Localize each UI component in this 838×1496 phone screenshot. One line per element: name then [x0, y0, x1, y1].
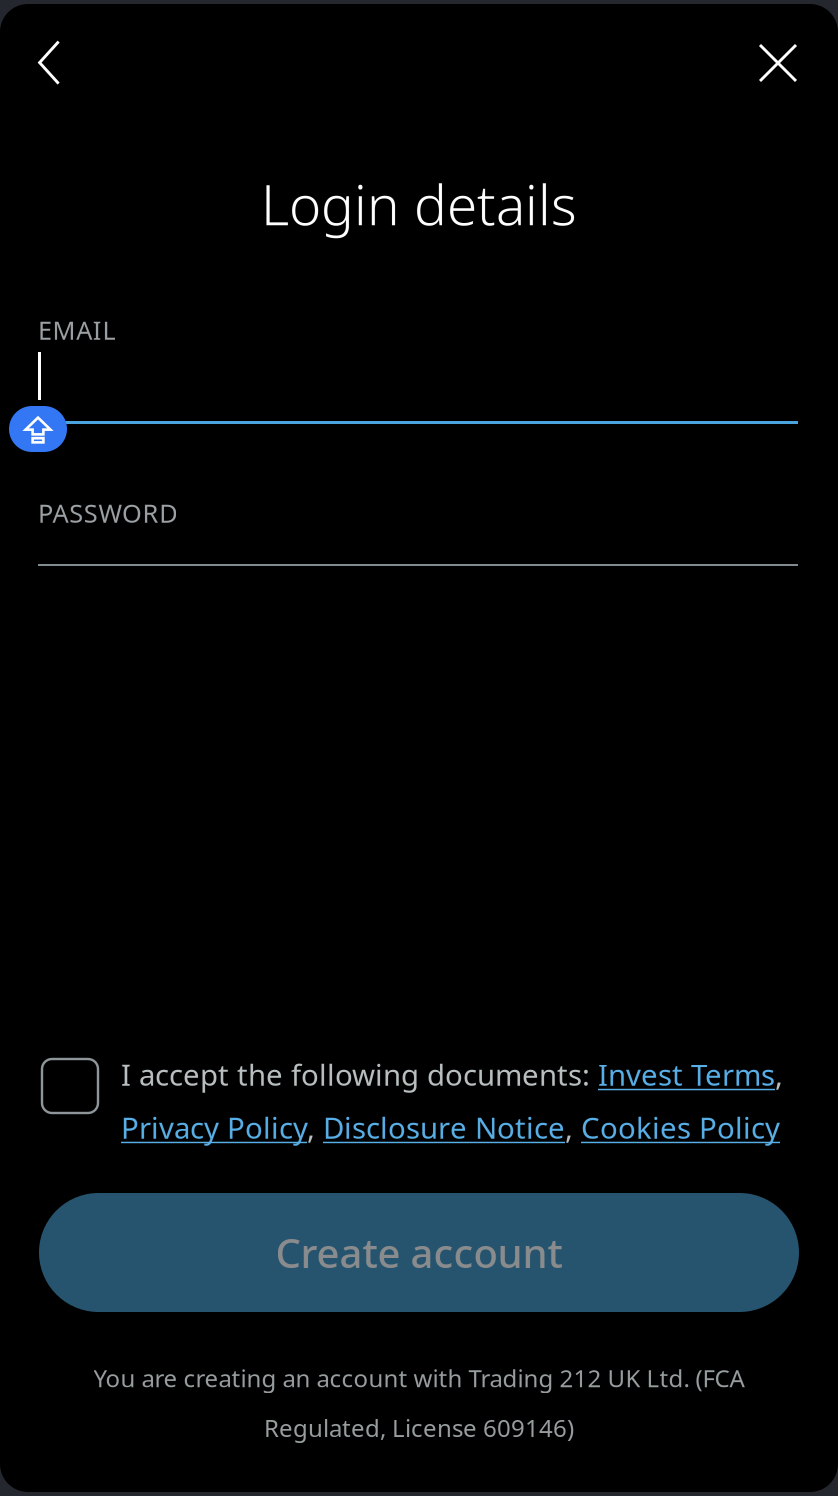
- staticText: Privacy Policy, Disclosure Notice, Cooki…: [121, 1108, 780, 1147]
- button[interactable]: Create account: [39, 1193, 799, 1312]
- staticText: EMAIL: [38, 313, 115, 347]
- staticText: PASSWORD: [38, 496, 177, 530]
- button[interactable]: Accept the documents: [42, 1059, 98, 1113]
- button[interactable]: Close: [738, 23, 818, 103]
- staticText: I accept the following documents: Invest…: [121, 1055, 783, 1094]
- staticText: Login details: [261, 168, 577, 240]
- staticText: Create account: [275, 1226, 562, 1279]
- button[interactable]: Back: [9, 23, 89, 103]
- staticText: You are creating an account with Trading…: [93, 1362, 744, 1394]
- button[interactable]: I accept the following documents: Invest…: [121, 1055, 821, 1147]
- staticText: Regulated, License 609146): [264, 1412, 574, 1444]
